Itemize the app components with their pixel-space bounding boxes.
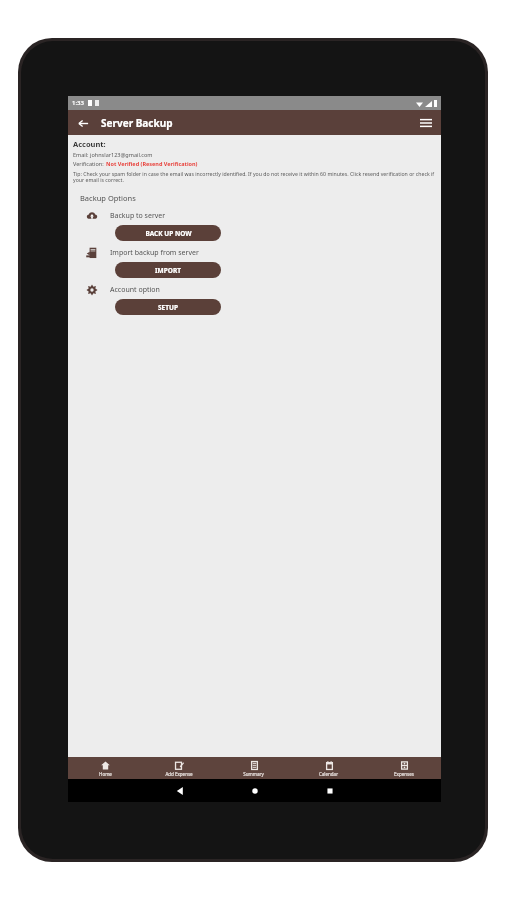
staticText: 1:33 [72,99,84,107]
button[interactable]: Not Verified (Resend Verification) [106,160,198,167]
staticText: Backup Options [80,193,136,203]
staticText: SETUP [158,303,178,312]
button[interactable]: SETUP [115,299,221,315]
staticText: Verification: [73,160,106,167]
button[interactable]: Recent apps [292,779,367,802]
staticText: Backup to server [110,211,166,221]
button[interactable]: Summary [216,757,291,779]
button[interactable]: Back [142,779,217,802]
button[interactable]: Back [74,114,92,132]
button[interactable]: Home [68,757,142,779]
button[interactable]: IMPORT [115,262,221,278]
staticText: Calendar [319,771,338,777]
button[interactable]: Home [217,779,292,802]
staticText: Account: [73,139,106,149]
staticText: Tip: Check your spam folder in case the … [73,170,436,184]
staticText: Home [99,771,112,777]
staticText: Account option [110,285,160,295]
button[interactable]: Add Expense [142,757,216,779]
staticText: Expenses [394,771,414,777]
staticText: Server Backup [101,116,173,130]
staticText: Email: johnslar123@gmail.com [73,151,153,158]
staticText: Import backup from server [110,248,199,258]
button[interactable]: BACK UP NOW [115,225,221,241]
staticText: IMPORT [155,266,181,275]
button[interactable]: Menu [417,114,435,132]
staticText: BACK UP NOW [145,229,192,238]
staticText: Add Expense [165,771,193,777]
button[interactable]: Expenses [366,757,441,779]
staticText: Summary [243,771,264,777]
button[interactable]: Calendar [291,757,366,779]
